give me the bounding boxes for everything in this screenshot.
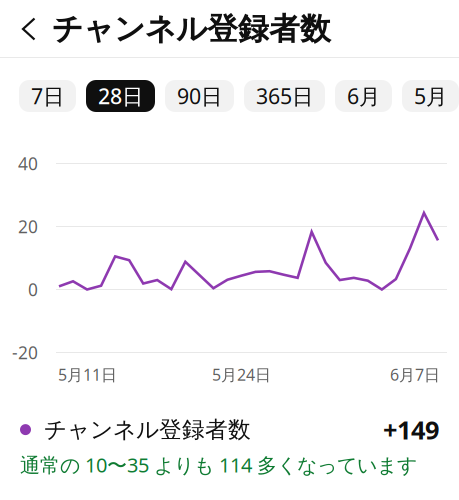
- staticText: 365日: [256, 82, 313, 110]
- staticText: 90日: [177, 82, 222, 110]
- staticText: チャンネル登録者数: [52, 10, 331, 48]
- staticText: 通常の 10〜35 よりも 114 多くなっています: [20, 451, 417, 478]
- staticText: 40: [18, 152, 38, 175]
- button[interactable]: 90日: [165, 80, 234, 112]
- button[interactable]: 6月: [335, 80, 392, 112]
- staticText: 7日: [31, 82, 64, 110]
- staticText: 5月: [414, 82, 447, 110]
- button[interactable]: 5月: [402, 80, 459, 112]
- staticText: 5月24日: [212, 364, 271, 385]
- staticText: -20: [12, 341, 38, 364]
- button[interactable]: 28日: [86, 80, 155, 112]
- staticText: 28日: [98, 82, 143, 110]
- button[interactable]: 7日: [19, 80, 76, 112]
- staticText: チャンネル登録者数: [44, 416, 251, 443]
- staticText: 0: [28, 278, 38, 301]
- staticText: 20: [18, 215, 38, 238]
- staticText: 6月7日: [390, 364, 440, 385]
- staticText: 6月: [347, 82, 380, 110]
- button[interactable]: 365日: [244, 80, 325, 112]
- button[interactable]: Back: [0, 0, 52, 58]
- staticText: +149: [383, 413, 439, 446]
- staticText: 5月11日: [58, 364, 117, 385]
